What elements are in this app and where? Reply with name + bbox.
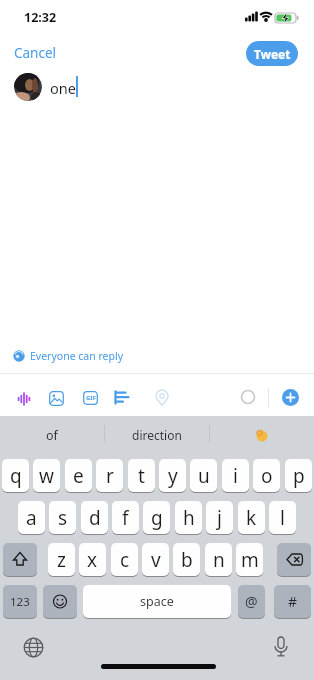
button[interactable]: k — [238, 501, 265, 534]
button[interactable] — [154, 389, 170, 407]
button[interactable] — [282, 389, 299, 406]
button[interactable]: # — [274, 585, 311, 618]
staticText: Everyone can reply — [30, 349, 123, 363]
button[interactable]: Cancel — [14, 44, 57, 62]
staticText: q — [10, 463, 22, 489]
button[interactable] — [3, 543, 37, 576]
staticText: a — [26, 505, 37, 531]
button[interactable] — [114, 390, 131, 406]
button[interactable] — [13, 388, 35, 410]
button[interactable]: u — [190, 459, 217, 492]
staticText: f — [122, 505, 129, 531]
staticText: t — [138, 463, 145, 489]
button[interactable]: q — [2, 459, 29, 492]
staticText: l — [280, 505, 285, 531]
staticText: o — [261, 463, 273, 489]
button[interactable]: space — [83, 585, 231, 618]
staticText: x — [87, 547, 98, 573]
staticText: z — [57, 547, 66, 573]
staticText: direction — [132, 427, 182, 443]
button[interactable]: o — [253, 459, 280, 492]
staticText: s — [58, 505, 68, 531]
staticText: Tweet — [254, 46, 291, 62]
button[interactable]: h — [175, 501, 202, 534]
button[interactable] — [43, 585, 77, 618]
button[interactable]: y — [159, 459, 186, 492]
staticText: w — [39, 463, 54, 489]
staticText: p — [293, 463, 305, 489]
staticText: m — [241, 547, 259, 573]
button[interactable]: d — [81, 501, 108, 534]
staticText: # — [288, 592, 298, 611]
staticText: v — [151, 547, 161, 573]
button[interactable] — [266, 630, 296, 664]
staticText: one — [50, 78, 76, 98]
staticText: k — [246, 505, 257, 531]
button[interactable]: Tweet — [246, 41, 298, 66]
button[interactable]: i — [222, 459, 249, 492]
staticText: space — [140, 593, 174, 610]
staticText: g — [151, 505, 163, 531]
button[interactable]: r — [96, 459, 123, 492]
button[interactable]: f — [112, 501, 139, 534]
staticText: b — [181, 547, 193, 573]
button[interactable]: Everyone can reply — [13, 348, 133, 365]
button[interactable]: v — [142, 543, 169, 576]
button[interactable] — [210, 426, 314, 444]
staticText: y — [168, 463, 178, 489]
button[interactable] — [49, 391, 65, 407]
button[interactable]: e — [65, 459, 92, 492]
button[interactable]: t — [128, 459, 155, 492]
button[interactable]: g — [143, 501, 170, 534]
button[interactable]: a — [18, 501, 45, 534]
button[interactable]: m — [236, 543, 263, 576]
button[interactable]: s — [49, 501, 76, 534]
staticText: h — [183, 505, 195, 531]
button[interactable]: p — [285, 459, 312, 492]
button[interactable]: x — [79, 543, 106, 576]
staticText: d — [89, 505, 101, 531]
button[interactable]: GIF — [83, 391, 98, 405]
button[interactable]: @ — [238, 585, 265, 618]
button[interactable]: z — [48, 543, 75, 576]
button[interactable]: c — [111, 543, 138, 576]
staticText: c — [120, 547, 130, 573]
button[interactable] — [18, 632, 48, 662]
staticText: 123 — [10, 594, 30, 610]
button[interactable]: direction — [105, 426, 209, 444]
button[interactable]: j — [206, 501, 233, 534]
staticText: @ — [245, 592, 258, 611]
staticText: Cancel — [14, 44, 57, 62]
staticText: 12:32 — [24, 9, 57, 26]
button[interactable]: 123 — [3, 585, 37, 618]
button[interactable]: b — [173, 543, 200, 576]
staticText: j — [217, 505, 222, 531]
staticText: n — [213, 547, 225, 573]
staticText: i — [233, 463, 238, 489]
staticText: of — [46, 427, 58, 444]
button[interactable]: w — [33, 459, 60, 492]
staticText: GIF — [86, 394, 96, 402]
staticText: e — [73, 463, 84, 489]
button[interactable] — [277, 543, 311, 576]
button[interactable]: of — [0, 426, 104, 444]
staticText: u — [198, 463, 210, 489]
staticText: r — [106, 463, 114, 489]
button[interactable]: n — [205, 543, 232, 576]
button[interactable]: l — [269, 501, 296, 534]
